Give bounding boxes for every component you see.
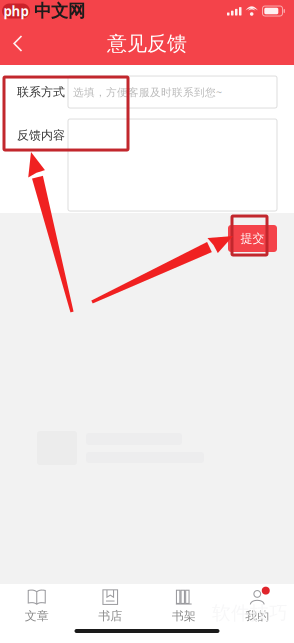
button[interactable]: 书架 bbox=[147, 585, 220, 627]
staticText: 软件技巧 bbox=[212, 601, 288, 624]
staticText: 选填，方便客服及时联系到您~ bbox=[73, 85, 222, 99]
button[interactable]: 提交 bbox=[228, 225, 277, 252]
staticText: 联系方式 bbox=[17, 85, 65, 99]
staticText: 书店 bbox=[98, 609, 122, 623]
staticText: 反馈内容 bbox=[17, 128, 65, 143]
staticText: 意见反馈 bbox=[107, 31, 187, 56]
staticText: 提交 bbox=[240, 231, 264, 246]
staticText: php bbox=[3, 2, 28, 20]
button[interactable]: 返回 bbox=[0, 23, 36, 63]
button[interactable]: 书店 bbox=[73, 585, 147, 627]
staticText: 文章 bbox=[25, 609, 49, 623]
button[interactable]: 文章 bbox=[0, 585, 73, 627]
staticText: 我的 bbox=[245, 609, 269, 623]
staticText: 书架 bbox=[172, 609, 196, 623]
staticText: 中文网 bbox=[34, 0, 85, 22]
button[interactable]: 我的 bbox=[220, 585, 294, 627]
